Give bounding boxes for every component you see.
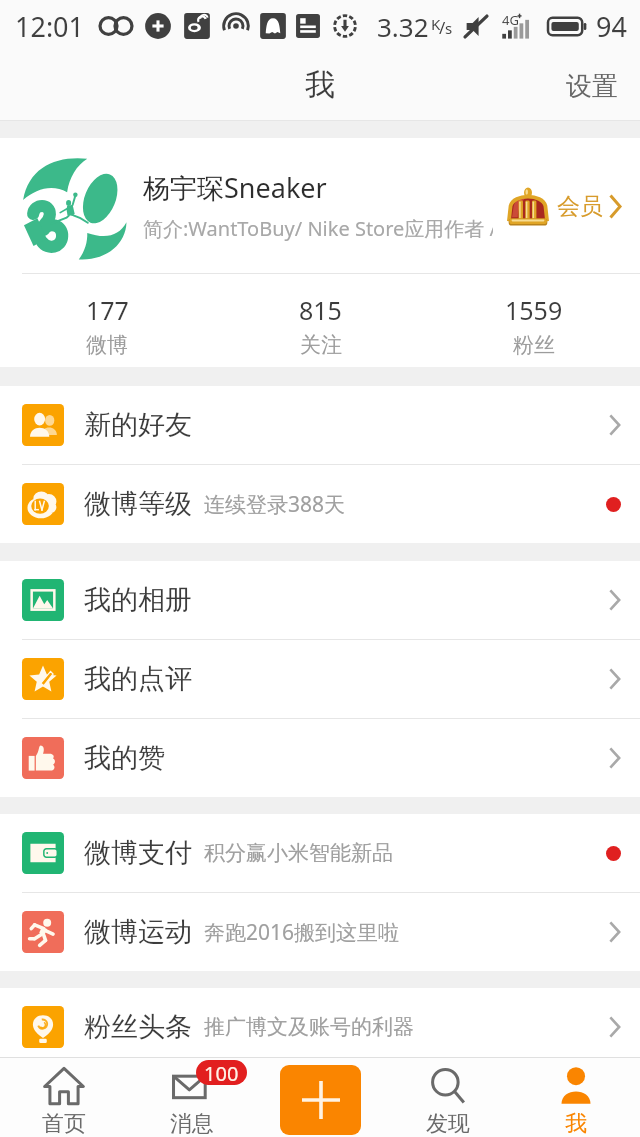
button[interactable]: 首页 [0,1061,128,1137]
staticText: 微博等级 [84,487,192,521]
staticText: 我 [565,1110,587,1137]
staticText: 粉丝头条 [84,1010,192,1044]
button[interactable]: 更多 [0,1067,640,1137]
staticText: 会员 [557,192,603,221]
button[interactable]: 1559 [427,274,640,367]
staticText: 1559 [505,293,563,327]
staticText: 消息 [170,1110,214,1137]
staticText: 4G [502,11,519,29]
staticText: 微博运动 [84,915,192,949]
button[interactable]: 177 [0,274,214,367]
staticText: 新的好友 [84,408,192,442]
staticText: 首页 [42,1110,86,1137]
button[interactable]: Compose new post [280,1065,361,1135]
button[interactable]: 粉丝头条 [0,988,640,1066]
staticText: 我的相册 [84,583,192,617]
button[interactable]: 100 [128,1061,256,1137]
button[interactable]: 微博运动 [0,893,640,971]
staticText: 我的赞 [84,741,165,775]
staticText: 100 [204,1060,239,1085]
staticText: 粉丝 [513,332,555,358]
staticText: 连续登录388天 [204,490,346,519]
staticText: 815 [299,293,342,327]
button[interactable]: 设置 [544,56,640,117]
staticText: s [445,18,453,38]
staticText: 关注 [300,332,342,358]
button[interactable]: 新的好友 [0,386,640,464]
staticText: 94 [596,8,627,45]
button[interactable]: 我的点评 [0,640,640,718]
staticText: 设置 [566,70,618,103]
staticText: 3.32 [377,9,429,44]
button[interactable]: 微博等级 [0,465,640,543]
staticText: 微博支付 [84,836,192,870]
staticText: 推广博文及账号的利器 [204,1014,414,1040]
staticText: 简介:WantToBuy/ Nike Store应用作者 /.. [143,215,493,242]
staticText: 积分赢小米智能新品 [204,840,393,866]
staticText: 微博 [86,332,128,358]
button[interactable]: 我的赞 [0,719,640,797]
button[interactable]: 我 [512,1061,640,1137]
button[interactable]: 微博支付 [0,814,640,892]
staticText: K [431,14,441,34]
button[interactable]: 杨宇琛Sneaker [0,138,640,273]
button[interactable]: 我的相册 [0,561,640,639]
staticText: 177 [86,293,129,327]
button[interactable]: VIP 会员 [507,186,640,226]
staticText: 我的点评 [84,662,192,696]
staticText: 12:01 [15,8,85,45]
staticText: 奔跑2016搬到这里啦 [204,918,400,947]
staticText: / [439,16,446,39]
staticText: 杨宇琛Sneaker [143,169,327,206]
staticText: 发现 [426,1110,470,1137]
staticText: 我 [305,66,335,104]
button[interactable]: 815 [214,274,427,367]
staticText: 更多 [84,1085,138,1119]
button[interactable]: 发现 [384,1061,512,1137]
